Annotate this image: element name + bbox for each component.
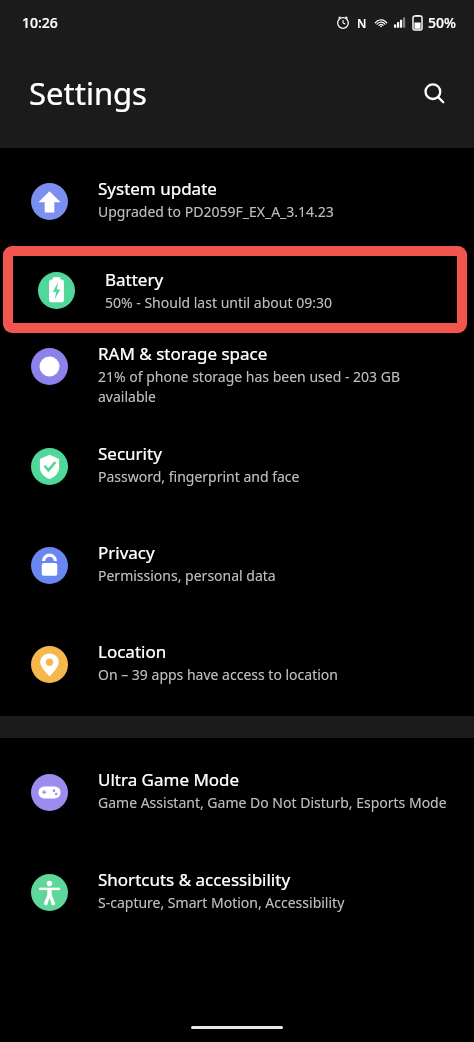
- staticText: 10:26: [22, 13, 58, 32]
- staticText: System update: [98, 177, 217, 200]
- staticText: 21% of phone storage has been used - 203…: [98, 367, 458, 406]
- button[interactable]: Battery: [13, 256, 457, 323]
- button[interactable]: Ultra Game Mode: [0, 762, 474, 862]
- staticText: Permissions, personal data: [98, 566, 276, 585]
- staticText: Battery: [105, 268, 164, 291]
- staticText: N: [357, 15, 367, 31]
- staticText: 50% - Should last until about 09:30: [105, 293, 332, 312]
- button[interactable]: System update: [0, 171, 474, 243]
- button[interactable]: Privacy: [0, 535, 474, 634]
- staticText: Settings: [29, 72, 147, 114]
- staticText: Password, fingerprint and face: [98, 467, 300, 486]
- staticText: Shortcuts & accessibility: [98, 868, 291, 891]
- staticText: Game Assistant, Game Do Not Disturb, Esp…: [98, 793, 447, 812]
- staticText: Upgraded to PD2059F_EX_A_3.14.23: [98, 202, 334, 221]
- staticText: S-capture, Smart Motion, Accessibility: [98, 893, 345, 912]
- staticText: RAM & storage space: [98, 342, 268, 365]
- staticText: Location: [98, 640, 167, 663]
- button[interactable]: Security: [0, 436, 474, 535]
- button[interactable]: Shortcuts & accessibility: [0, 862, 474, 934]
- staticText: Privacy: [98, 541, 155, 564]
- staticText: Security: [98, 442, 162, 465]
- button[interactable]: Location: [0, 634, 474, 709]
- button[interactable]: Search: [416, 75, 452, 111]
- staticText: 50%: [428, 13, 456, 32]
- staticText: Ultra Game Mode: [98, 768, 240, 791]
- staticText: On – 39 apps have access to location: [98, 665, 338, 684]
- button[interactable]: RAM & storage space: [0, 336, 474, 436]
